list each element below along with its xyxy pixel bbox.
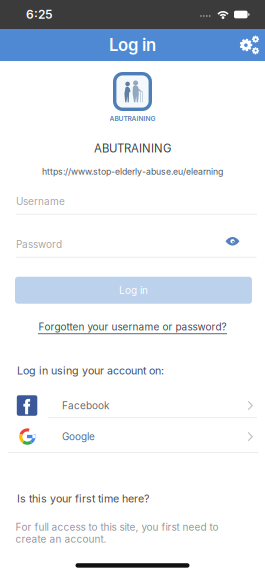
button[interactable]: Show password xyxy=(217,233,256,255)
button[interactable]: Google xyxy=(0,418,265,452)
staticText: Username xyxy=(16,195,65,207)
staticText: Log in using your account on: xyxy=(17,364,164,377)
staticText: ABUTRAINING xyxy=(94,142,171,155)
staticText: For full access to this site, you first … xyxy=(15,521,218,545)
staticText: Forgotten your username or password? xyxy=(38,321,226,333)
button[interactable]: Settings xyxy=(234,30,265,60)
staticText: Password xyxy=(16,238,62,250)
button[interactable]: Log in xyxy=(0,277,265,304)
staticText: Log in xyxy=(119,284,148,296)
staticText: https://www.stop-elderly-abuse.eu/elearn… xyxy=(42,166,223,177)
staticText: Is this your first time here? xyxy=(17,492,149,505)
staticText: Log in xyxy=(109,35,156,55)
button[interactable]: Facebook xyxy=(0,383,265,417)
staticText: Facebook xyxy=(62,399,109,412)
staticText: 6:25 xyxy=(26,7,53,22)
staticText: ABUTRAINING xyxy=(109,114,155,123)
staticText: Google xyxy=(62,430,95,443)
button[interactable]: Forgotten your username or password? xyxy=(16,317,249,338)
